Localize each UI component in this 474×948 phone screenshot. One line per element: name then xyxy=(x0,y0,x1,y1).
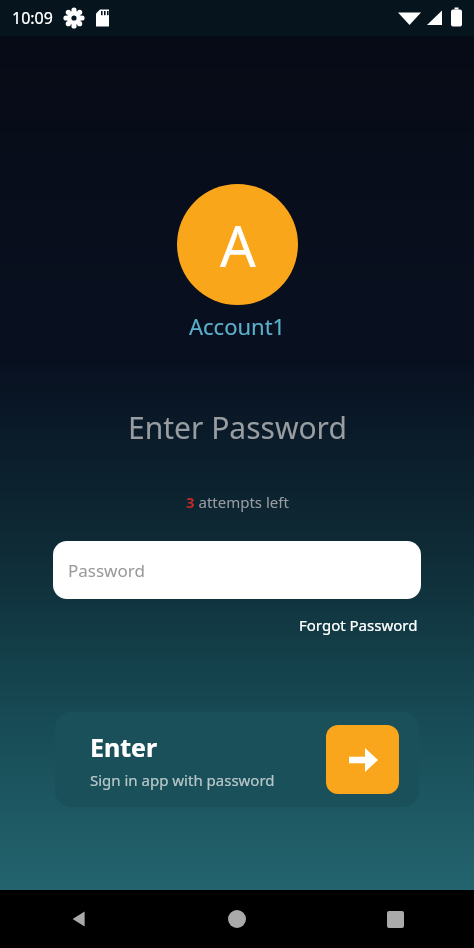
button[interactable]: Recents xyxy=(316,890,474,948)
staticText: Password xyxy=(68,559,145,582)
staticText: 3 attempts left xyxy=(186,492,289,512)
staticText: Enter Password xyxy=(128,407,347,448)
button[interactable]: Enter xyxy=(326,725,399,794)
button[interactable]: Enter xyxy=(55,712,419,807)
button[interactable]: Account1 xyxy=(189,311,286,341)
staticText: A xyxy=(220,207,256,283)
button[interactable]: Password xyxy=(53,541,421,599)
button[interactable]: Forgot Password xyxy=(299,615,418,635)
staticText: Enter xyxy=(90,730,158,764)
button[interactable]: Home xyxy=(158,890,316,948)
staticText: Sign in app with password xyxy=(90,770,275,790)
button[interactable]: A xyxy=(177,184,298,305)
staticText: 10:09 xyxy=(12,7,53,29)
button[interactable]: Back xyxy=(0,890,158,948)
